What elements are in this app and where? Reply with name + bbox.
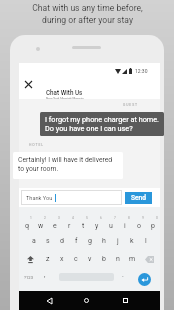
staticText: 3 [58, 216, 60, 220]
button[interactable]: l [139, 233, 153, 249]
button[interactable]: ?123 [24, 275, 34, 280]
staticText: Chat with us any time before, [32, 3, 143, 13]
button[interactable]: 2 [34, 215, 48, 231]
button[interactable]: 0 [146, 215, 160, 231]
staticText: p [151, 222, 155, 230]
staticText: u [109, 222, 113, 230]
staticText: Certainly! I will have it delivered [18, 156, 113, 164]
staticText: Chat With Us [46, 89, 83, 96]
button[interactable]: c [69, 251, 83, 267]
staticText: 5 [86, 216, 88, 220]
staticText: 6 [100, 216, 102, 220]
button[interactable]: h [97, 233, 111, 249]
staticText: s [46, 237, 50, 245]
staticText: n [116, 255, 120, 263]
staticText: l [145, 237, 147, 245]
staticText: Send [131, 194, 146, 202]
button[interactable]: 9 [132, 215, 146, 231]
staticText: a [32, 237, 36, 245]
staticText: Thank You [26, 195, 53, 202]
staticText: to your room. [18, 165, 59, 173]
staticText: c [74, 255, 78, 263]
staticText: w [38, 222, 44, 230]
button[interactable]: , [44, 271, 46, 279]
button[interactable]: 6 [90, 215, 104, 231]
staticText: o [137, 222, 141, 230]
staticText: k [130, 237, 134, 245]
staticText: 1 [30, 216, 32, 220]
staticText: m [129, 255, 136, 263]
button[interactable]: d [55, 233, 69, 249]
staticText: 8 [128, 216, 130, 220]
button[interactable]: Enter [138, 273, 151, 286]
staticText: e [53, 222, 57, 230]
button[interactable]: 8 [118, 215, 132, 231]
staticText: 0 [156, 216, 158, 220]
button[interactable]: 4 [62, 215, 76, 231]
staticText: x [60, 255, 64, 263]
button[interactable]: b [97, 251, 111, 267]
staticText: f [75, 237, 78, 245]
staticText: h [102, 237, 106, 245]
button[interactable]: 7 [104, 215, 118, 231]
button[interactable]: I forgot my phone charger at home. [40, 112, 164, 136]
button[interactable]: z [41, 251, 55, 267]
staticText: 4 [72, 216, 74, 220]
button[interactable]: v [83, 251, 97, 267]
button[interactable]: m [125, 251, 139, 267]
staticText: q [25, 222, 29, 230]
staticText: Do you have one I can use? [45, 124, 133, 133]
button[interactable]: . [122, 271, 124, 279]
staticText: z [46, 255, 50, 263]
button[interactable]: Close chat [19, 75, 37, 93]
staticText: 9 [142, 216, 144, 220]
button[interactable]: Home [77, 291, 96, 310]
button[interactable]: Send [125, 192, 152, 204]
staticText: i [124, 222, 126, 230]
staticText: 2 [44, 216, 46, 220]
staticText: HOTEL [29, 143, 44, 147]
button[interactable]: Back [40, 291, 59, 310]
button[interactable]: f [69, 233, 83, 249]
staticText: r [68, 222, 71, 230]
button[interactable]: s [41, 233, 55, 249]
staticText: d [60, 237, 64, 245]
staticText: v [88, 255, 92, 263]
button[interactable]: x [55, 251, 69, 267]
button[interactable]: Recent apps [116, 291, 135, 310]
button[interactable]: 3 [48, 215, 62, 231]
button[interactable]: Shift [19, 251, 41, 267]
staticText: 7 [114, 216, 116, 220]
staticText: during or after your stay [42, 15, 133, 25]
staticText: y [95, 222, 99, 230]
button[interactable]: Thank You [21, 190, 122, 205]
button[interactable]: k [125, 233, 139, 249]
staticText: b [102, 255, 106, 263]
staticText: New York Marriott Marquis [46, 97, 84, 101]
button[interactable]: a [27, 233, 41, 249]
button[interactable]: j [111, 233, 125, 249]
button[interactable]: 5 [76, 215, 90, 231]
button[interactable]: Certainly! I will have it delivered [13, 152, 123, 179]
button[interactable]: Backspace [139, 251, 160, 267]
staticText: g [88, 237, 92, 245]
staticText: I forgot my phone charger at home. [45, 115, 160, 124]
button[interactable]: n [111, 251, 125, 267]
staticText: t [82, 222, 85, 230]
staticText: GUEST [123, 103, 138, 107]
staticText: 12:30 [135, 68, 148, 74]
button[interactable]: g [83, 233, 97, 249]
button[interactable]: 1 [19, 215, 34, 231]
staticText: j [117, 237, 119, 245]
